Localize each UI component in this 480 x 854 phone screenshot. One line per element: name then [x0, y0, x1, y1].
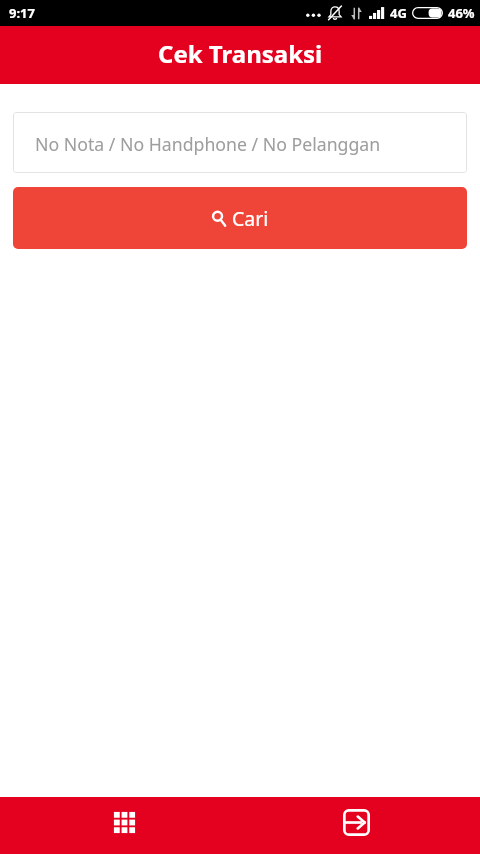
staticText: Cek Transaksi — [158, 37, 323, 70]
staticText: Cari — [232, 205, 269, 232]
button[interactable]: Menu — [8, 797, 240, 848]
staticText: No Nota / No Handphone / No Pelanggan — [35, 132, 381, 156]
button[interactable]: Cari — [13, 187, 467, 249]
button[interactable]: Logout — [240, 797, 472, 848]
staticText: 9:17 — [9, 4, 35, 22]
staticText: 4G — [390, 4, 407, 22]
staticText: 46% — [448, 4, 475, 22]
button[interactable]: No Nota / No Handphone / No Pelanggan — [13, 112, 467, 173]
